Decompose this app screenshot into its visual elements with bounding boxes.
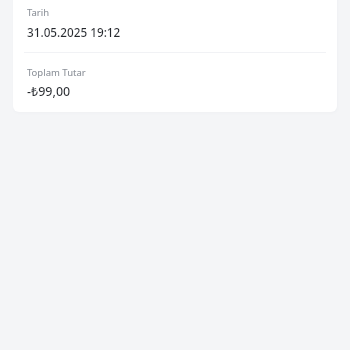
staticText: Tarih xyxy=(27,6,50,19)
button[interactable]: Tarih xyxy=(13,0,337,52)
button[interactable]: Toplam Tutar xyxy=(13,53,337,112)
staticText: -₺99,00 xyxy=(27,83,71,100)
staticText: Toplam Tutar xyxy=(27,66,86,79)
staticText: 31.05.2025 19:12 xyxy=(27,24,121,40)
